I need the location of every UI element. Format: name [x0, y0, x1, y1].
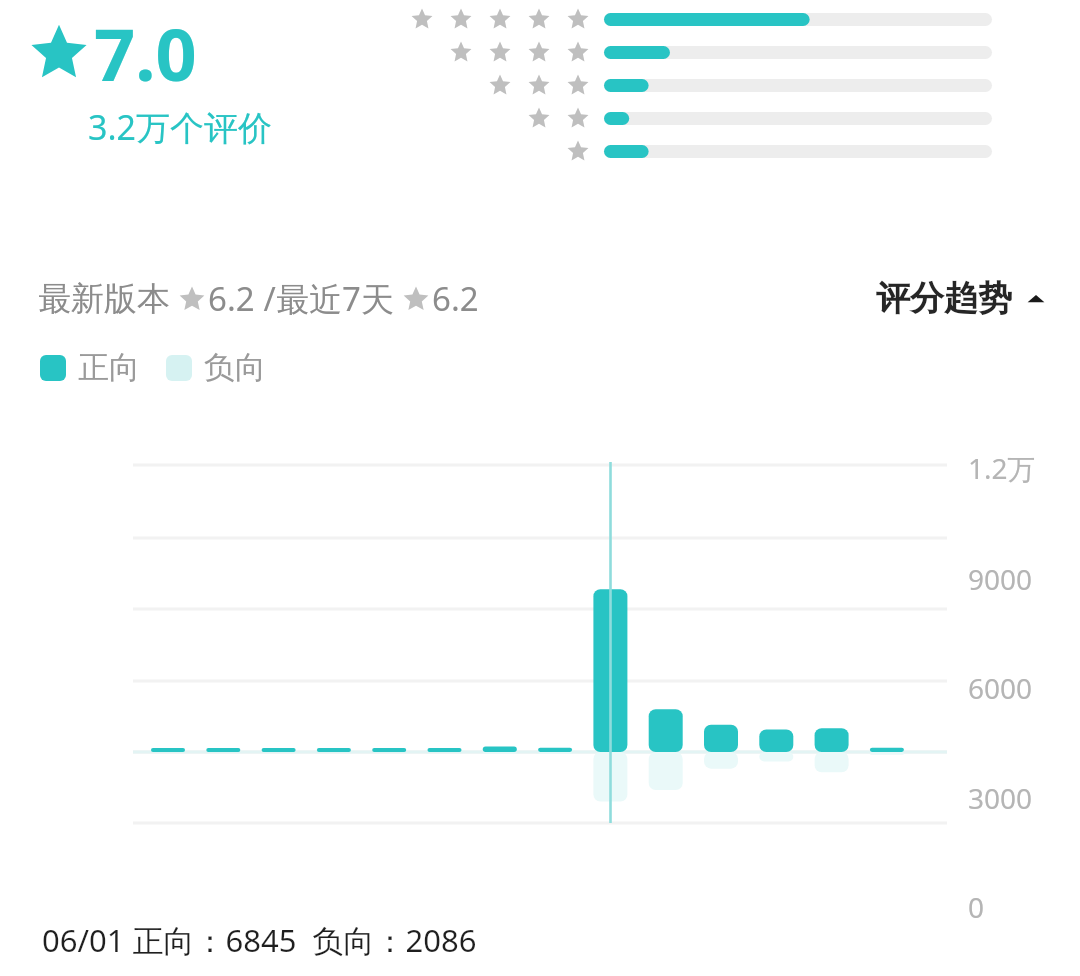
button[interactable]	[0, 430, 1080, 850]
staticText: 1.2万	[968, 449, 1036, 487]
staticText: 06/01 正向：6845 负向：2086	[42, 919, 477, 961]
staticText: 负向	[204, 348, 266, 387]
staticText: 7.0	[94, 4, 197, 102]
staticText: 最新版本	[38, 278, 170, 320]
staticText: 6.2	[208, 276, 255, 321]
staticText: 最近7天	[276, 276, 394, 321]
staticText: 6.2	[432, 276, 479, 321]
staticText: 正向	[78, 348, 140, 387]
staticText: 3000	[968, 779, 1033, 817]
staticText: 0	[968, 888, 985, 926]
staticText: /	[255, 276, 276, 321]
staticText: 3.2万个评价	[88, 104, 273, 150]
staticText: 9000	[968, 560, 1033, 598]
staticText: 评分趋势	[876, 277, 1012, 320]
button[interactable]: 评分趋势	[872, 271, 1050, 326]
staticText: 6000	[968, 669, 1033, 707]
other: Collapse rating trend	[1026, 289, 1046, 309]
